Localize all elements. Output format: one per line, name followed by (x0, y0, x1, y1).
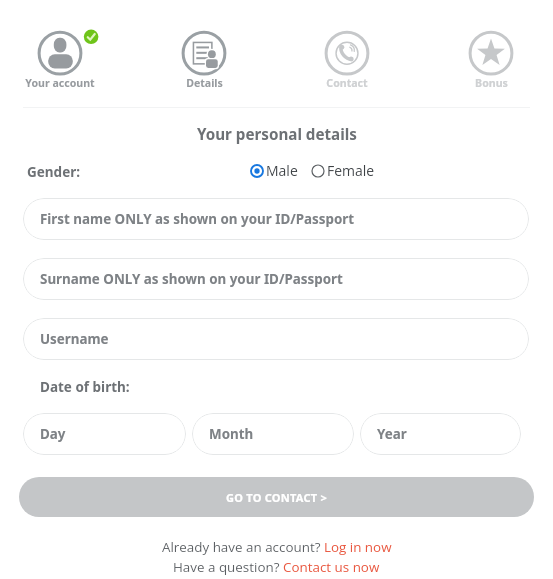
staticText: Have a question? (173, 558, 283, 576)
button[interactable]: Contact us now (283, 558, 380, 576)
staticText: Details (186, 76, 223, 90)
button[interactable]: Your account (10, 18, 110, 98)
button[interactable]: Male (250, 161, 298, 180)
staticText: Gender: (27, 163, 81, 181)
staticText: Log in now (324, 538, 392, 556)
staticText: First name ONLY as shown on your ID/Pass… (40, 210, 355, 228)
staticText: Already have an account? (162, 538, 324, 556)
button[interactable]: Log in now (324, 538, 392, 556)
staticText: Month (209, 425, 254, 443)
staticText: Day (40, 425, 66, 443)
button[interactable]: Bonus (441, 18, 541, 98)
staticText: Your personal details (197, 124, 357, 145)
button[interactable]: Details (154, 18, 254, 98)
staticText: GO TO CONTACT > (226, 490, 327, 505)
button[interactable]: Username (23, 318, 529, 360)
staticText: Bonus (475, 76, 508, 90)
staticText: Date of birth: (40, 378, 130, 396)
button[interactable]: First name ONLY as shown on your ID/Pass… (23, 198, 529, 240)
staticText: Contact (326, 76, 368, 90)
button[interactable]: Female (311, 161, 375, 180)
button[interactable]: Contact (297, 18, 397, 98)
staticText: Your account (25, 76, 95, 90)
staticText: Female (327, 161, 375, 180)
staticText: Male (266, 161, 298, 180)
staticText: Contact us now (283, 558, 380, 576)
staticText: Year (377, 425, 407, 443)
staticText: Username (40, 330, 109, 348)
button[interactable]: GO TO CONTACT > (19, 477, 534, 517)
staticText: Surname ONLY as shown on your ID/Passpor… (40, 270, 343, 288)
button[interactable]: Year (360, 413, 521, 455)
button[interactable]: Surname ONLY as shown on your ID/Passpor… (23, 258, 529, 300)
button[interactable]: Month (192, 413, 354, 455)
button[interactable]: Day (23, 413, 186, 455)
